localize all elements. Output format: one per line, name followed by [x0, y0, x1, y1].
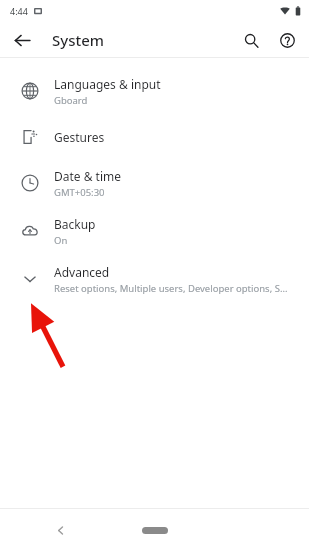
- button[interactable]: Gestures: [0, 115, 309, 159]
- button[interactable]: Home: [131, 519, 179, 541]
- staticText: Gboard: [54, 94, 88, 107]
- staticText: Reset options, Multiple users, Developer…: [54, 282, 288, 295]
- staticText: Advanced: [54, 264, 110, 280]
- button[interactable]: Back: [46, 516, 74, 544]
- staticText: Date & time: [54, 168, 122, 184]
- button[interactable]: Backup: [0, 207, 309, 255]
- button[interactable]: Languages & input: [0, 67, 309, 115]
- staticText: System: [52, 30, 105, 50]
- button[interactable]: Help: [271, 24, 303, 56]
- button[interactable]: Search: [235, 24, 267, 56]
- staticText: Languages & input: [54, 76, 161, 92]
- staticText: Gestures: [54, 129, 105, 145]
- staticText: GMT+05:30: [54, 186, 105, 199]
- staticText: Backup: [54, 216, 96, 232]
- button[interactable]: Back: [6, 24, 38, 56]
- staticText: 4:44: [10, 5, 28, 17]
- button[interactable]: Date & time: [0, 159, 309, 207]
- staticText: On: [54, 234, 68, 247]
- button[interactable]: Advanced: [0, 255, 309, 303]
